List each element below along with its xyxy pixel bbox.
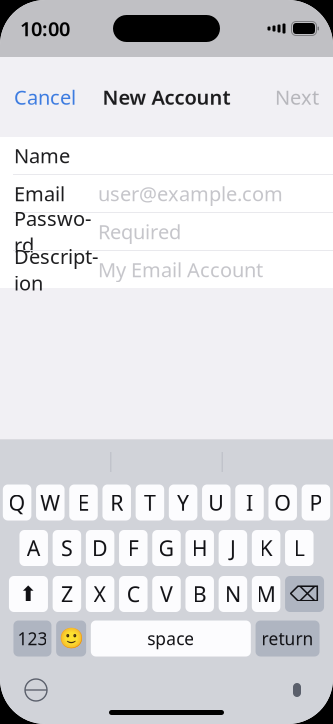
button[interactable]: S: [53, 530, 81, 566]
staticText: V: [160, 580, 173, 608]
staticText: Q: [9, 488, 26, 517]
staticText: Email: [14, 180, 65, 207]
staticText: 123: [17, 627, 47, 650]
button[interactable]: K: [252, 530, 280, 566]
button[interactable]: T: [136, 484, 164, 520]
staticText: N: [225, 580, 241, 608]
button[interactable]: E: [69, 484, 98, 520]
staticText: Next: [275, 84, 319, 110]
button[interactable]: I: [235, 484, 264, 520]
staticText: A: [27, 534, 41, 562]
button[interactable]: R: [102, 484, 131, 520]
button[interactable]: Description: [0, 251, 333, 288]
staticText: user@example.com: [98, 180, 283, 207]
staticText: Password: [14, 205, 91, 258]
button[interactable]: M: [252, 576, 280, 612]
staticText: B: [193, 580, 207, 608]
button[interactable]: Q: [3, 484, 31, 520]
staticText: K: [260, 534, 273, 562]
staticText: My Email Account: [98, 256, 263, 283]
button[interactable]: J: [219, 530, 247, 566]
staticText: 10:00: [20, 15, 70, 42]
button[interactable]: V: [152, 576, 181, 612]
button[interactable]: ⬆: [9, 576, 48, 612]
staticText: M: [257, 580, 276, 608]
staticText: J: [230, 534, 236, 562]
staticText: return: [261, 627, 313, 650]
button[interactable]: D: [86, 530, 114, 566]
staticText: H: [192, 534, 208, 562]
staticText: T: [144, 488, 156, 517]
button[interactable]: 🙂: [56, 620, 86, 656]
button[interactable]: Password: [0, 213, 333, 250]
button[interactable]: Name: [0, 137, 333, 174]
staticText: Y: [177, 488, 189, 517]
staticText: P: [309, 488, 322, 517]
staticText: G: [158, 534, 174, 562]
staticText: 🙂: [59, 627, 84, 650]
button[interactable]: W: [36, 484, 64, 520]
staticText: ⌫: [289, 582, 319, 606]
button[interactable]: C: [119, 576, 148, 612]
button[interactable]: Switch keyboard: [25, 679, 47, 701]
button[interactable]: Dictate: [286, 679, 308, 701]
button[interactable]: return: [255, 620, 319, 656]
button[interactable]: N: [219, 576, 247, 612]
staticText: Cancel: [14, 84, 76, 110]
staticText: New Account: [102, 84, 230, 110]
staticText: space: [147, 627, 194, 650]
staticText: D: [92, 534, 108, 562]
staticText: E: [77, 488, 89, 517]
staticText: Name: [14, 142, 70, 169]
button[interactable]: H: [185, 530, 214, 566]
staticText: Z: [61, 580, 73, 608]
staticText: O: [274, 488, 291, 517]
button[interactable]: X: [86, 576, 114, 612]
button[interactable]: O: [268, 484, 297, 520]
button[interactable]: Next: [261, 75, 333, 119]
staticText: L: [294, 534, 305, 562]
button[interactable]: Email: [0, 175, 333, 212]
staticText: U: [208, 488, 224, 517]
button[interactable]: ⌫: [285, 576, 324, 612]
staticText: Required: [98, 218, 181, 245]
staticText: Description: [14, 243, 98, 296]
staticText: I: [246, 488, 253, 517]
button[interactable]: L: [285, 530, 313, 566]
button[interactable]: B: [185, 576, 214, 612]
button[interactable]: A: [19, 530, 48, 566]
staticText: F: [128, 534, 139, 562]
button[interactable]: Y: [169, 484, 197, 520]
staticText: S: [61, 534, 73, 562]
button[interactable]: Cancel: [0, 75, 90, 119]
button[interactable]: Z: [53, 576, 81, 612]
button[interactable]: U: [202, 484, 230, 520]
staticText: W: [40, 488, 60, 517]
button[interactable]: space: [91, 620, 251, 656]
button[interactable]: 123: [13, 620, 51, 656]
staticText: C: [127, 580, 140, 608]
staticText: R: [110, 488, 123, 517]
staticText: ⬆: [19, 582, 37, 606]
staticText: X: [94, 580, 107, 608]
button[interactable]: F: [119, 530, 147, 566]
button[interactable]: G: [152, 530, 181, 566]
button[interactable]: P: [302, 484, 330, 520]
